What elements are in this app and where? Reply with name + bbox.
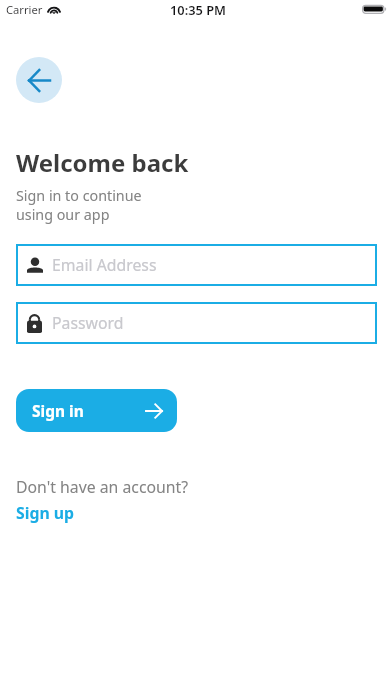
staticText: Password xyxy=(52,312,124,334)
button[interactable]: Back xyxy=(16,57,62,103)
staticText: Sign up xyxy=(16,502,75,524)
staticText: Don't have an account? xyxy=(16,476,189,498)
staticText: Sign in xyxy=(32,400,84,421)
staticText: Sign in to continue using our app xyxy=(16,186,142,224)
staticText: Carrier xyxy=(6,2,43,17)
button[interactable]: Sign in xyxy=(16,389,177,432)
staticText: Welcome back xyxy=(16,146,189,179)
button[interactable]: Password xyxy=(16,302,377,344)
staticText: 10:35 PM xyxy=(170,1,226,18)
button[interactable]: Email Address xyxy=(16,244,377,286)
staticText: Email Address xyxy=(52,254,157,276)
button[interactable]: Sign up xyxy=(16,502,75,524)
